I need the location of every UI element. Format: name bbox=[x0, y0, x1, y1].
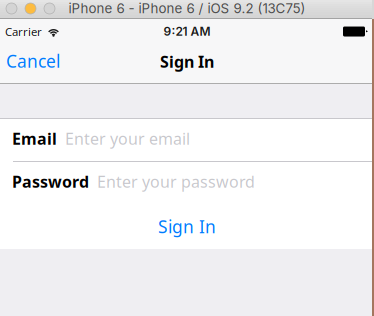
staticText: Carrier bbox=[5, 24, 42, 39]
staticText: iPhone 6 - iPhone 6 / iOS 9.2 (13C75) bbox=[68, 0, 305, 16]
staticText: Password bbox=[12, 171, 89, 192]
staticText: 9:21 AM bbox=[163, 24, 210, 39]
staticText: Enter your email bbox=[65, 128, 190, 149]
button[interactable]: Sign In bbox=[0, 204, 374, 249]
staticText: Enter your password bbox=[97, 171, 255, 192]
staticText: Sign In bbox=[160, 51, 214, 72]
staticText: Sign In bbox=[158, 215, 216, 238]
button[interactable]: Cancel bbox=[5, 46, 61, 76]
staticText: Cancel bbox=[6, 49, 60, 73]
staticText: Email bbox=[12, 128, 57, 149]
